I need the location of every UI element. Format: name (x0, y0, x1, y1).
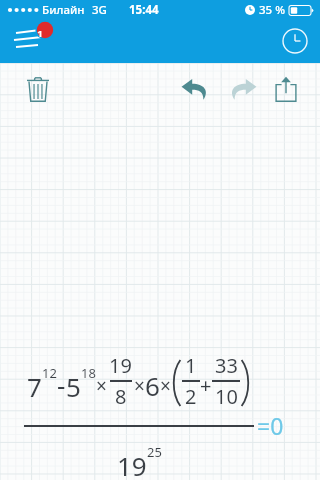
button[interactable]: Share (266, 69, 306, 109)
staticText: 15:44 (129, 2, 159, 18)
staticText: 25 (147, 443, 162, 461)
staticText: 6 (145, 368, 160, 403)
staticText: - (57, 367, 66, 402)
staticText: × (160, 373, 171, 399)
staticText: × (134, 373, 145, 399)
staticText: 19 (109, 352, 132, 379)
staticText: 10 (215, 383, 238, 410)
staticText: + (200, 372, 212, 399)
staticText: 3G (92, 2, 107, 18)
button[interactable]: Delete (18, 69, 58, 109)
staticText: 1 (185, 352, 197, 379)
staticText: 7 (27, 369, 42, 404)
button[interactable]: Undo (174, 68, 216, 110)
staticText: =0 (257, 410, 284, 441)
button[interactable]: Redo (222, 68, 264, 110)
staticText: 35 % (259, 2, 285, 18)
staticText: 19 (117, 448, 147, 480)
button[interactable]: Menu (8, 22, 56, 58)
staticText: 18 (81, 364, 96, 382)
staticText: 5 (66, 369, 81, 404)
staticText: 1 (37, 27, 43, 40)
staticText: 2 (185, 383, 197, 410)
staticText: 8 (115, 383, 127, 410)
staticText: 33 (215, 352, 238, 379)
staticText: Билайн (42, 2, 85, 18)
staticText: 12 (42, 364, 57, 382)
button[interactable]: History (278, 24, 312, 58)
staticText: × (96, 373, 107, 399)
